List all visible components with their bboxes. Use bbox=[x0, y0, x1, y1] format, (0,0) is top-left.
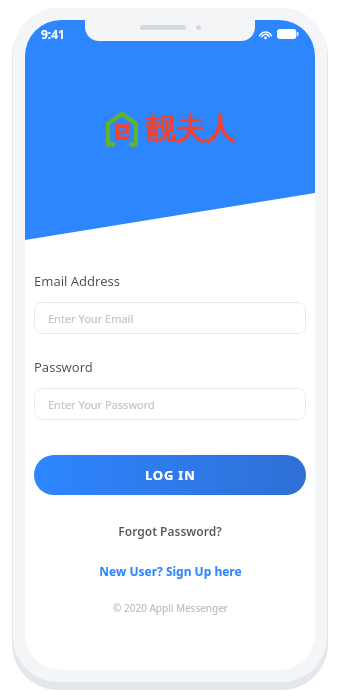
staticText: © 2020 Appli Messenger bbox=[113, 601, 228, 615]
button[interactable]: Forgot Password? bbox=[34, 523, 306, 539]
staticText: Password bbox=[34, 358, 93, 376]
staticText: Forgot Password? bbox=[118, 523, 222, 539]
staticText: New User? Sign Up here bbox=[99, 563, 242, 579]
staticText: 靓夫人 bbox=[145, 110, 235, 148]
staticText: 9:41 bbox=[41, 26, 65, 42]
staticText: LOG IN bbox=[145, 466, 196, 484]
button[interactable]: Enter Your Password bbox=[34, 388, 306, 420]
button[interactable]: Enter Your Email bbox=[34, 302, 306, 334]
button[interactable]: LOG IN bbox=[34, 455, 306, 495]
button[interactable]: New User? Sign Up here bbox=[34, 563, 306, 579]
staticText: Enter Your Password bbox=[48, 397, 155, 412]
staticText: Enter Your Email bbox=[48, 311, 134, 326]
staticText: Email Address bbox=[34, 272, 120, 290]
